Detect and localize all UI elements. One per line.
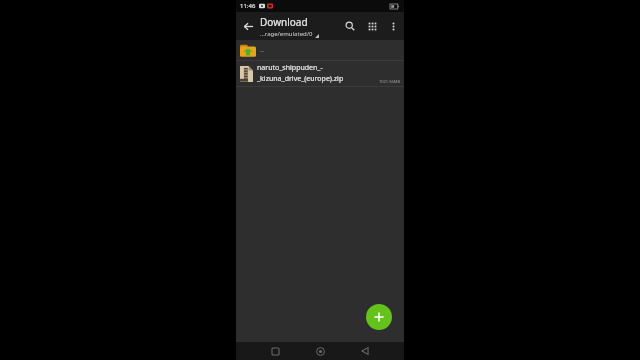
button[interactable]: naruto_shippuden_- (236, 61, 404, 86)
button[interactable]: Add (366, 304, 392, 330)
button[interactable]: Back (356, 342, 374, 360)
button[interactable]: Download (260, 15, 339, 38)
staticText: naruto_shippuden_- (257, 63, 323, 73)
button[interactable]: Grid view (361, 15, 383, 37)
staticText: 1021.56MB (379, 79, 401, 84)
staticText: Download (260, 15, 308, 29)
staticText: _kizuna_drive_(europe).zip (257, 74, 344, 84)
button[interactable]: More options (383, 16, 403, 36)
staticText: .. (260, 45, 264, 55)
button[interactable]: Recents (266, 342, 284, 360)
staticText: ...rage/emulated/0 (260, 30, 313, 38)
button[interactable]: Search (339, 15, 361, 37)
button[interactable]: .. (236, 40, 404, 60)
button[interactable]: Back (236, 14, 260, 38)
staticText: 11:46 (240, 2, 256, 10)
button[interactable]: Home (311, 342, 329, 360)
